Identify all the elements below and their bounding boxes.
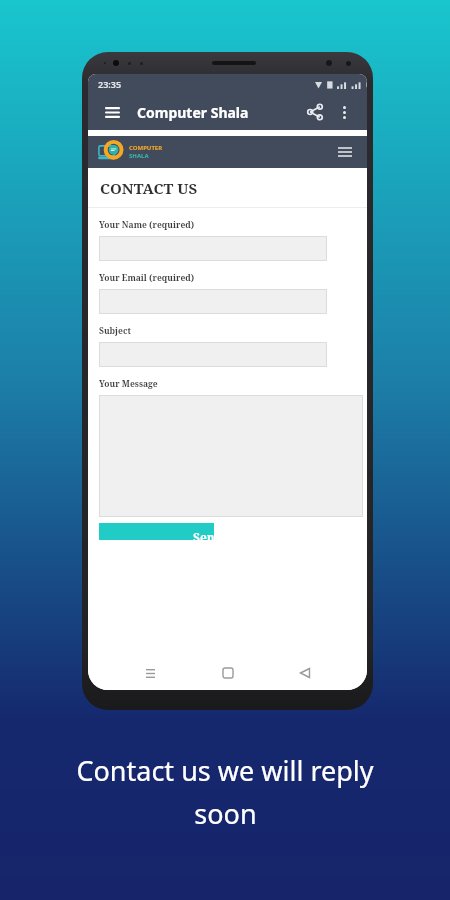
- staticText: Your Message: [99, 378, 158, 390]
- button[interactable]: More options: [332, 100, 356, 124]
- staticText: soon: [194, 795, 257, 832]
- button[interactable]: Share: [302, 99, 328, 125]
- staticText: SHALA: [129, 152, 149, 160]
- staticText: Computer Shala: [137, 103, 249, 122]
- button[interactable]: Text input: [99, 236, 327, 261]
- button[interactable]: Text input: [99, 342, 327, 367]
- button[interactable]: Send: [99, 523, 214, 540]
- staticText: Send: [193, 529, 223, 545]
- staticText: Contact us we will reply: [76, 752, 374, 789]
- staticText: Subject: [99, 325, 131, 337]
- staticText: CONTACT US: [100, 178, 198, 198]
- button[interactable]: Back: [290, 658, 320, 688]
- button[interactable]: Text input: [99, 395, 363, 517]
- button[interactable]: Open navigation drawer: [99, 99, 125, 125]
- staticText: 23:35: [98, 78, 122, 90]
- button[interactable]: Website menu: [333, 140, 357, 164]
- button[interactable]: Text input: [99, 289, 327, 314]
- staticText: Your Name (required): [99, 219, 195, 231]
- staticText: Your Email (required): [99, 272, 195, 284]
- button[interactable]: Home: [213, 658, 243, 688]
- button[interactable]: Recent apps: [135, 658, 165, 688]
- staticText: COMPUTER: [129, 144, 163, 152]
